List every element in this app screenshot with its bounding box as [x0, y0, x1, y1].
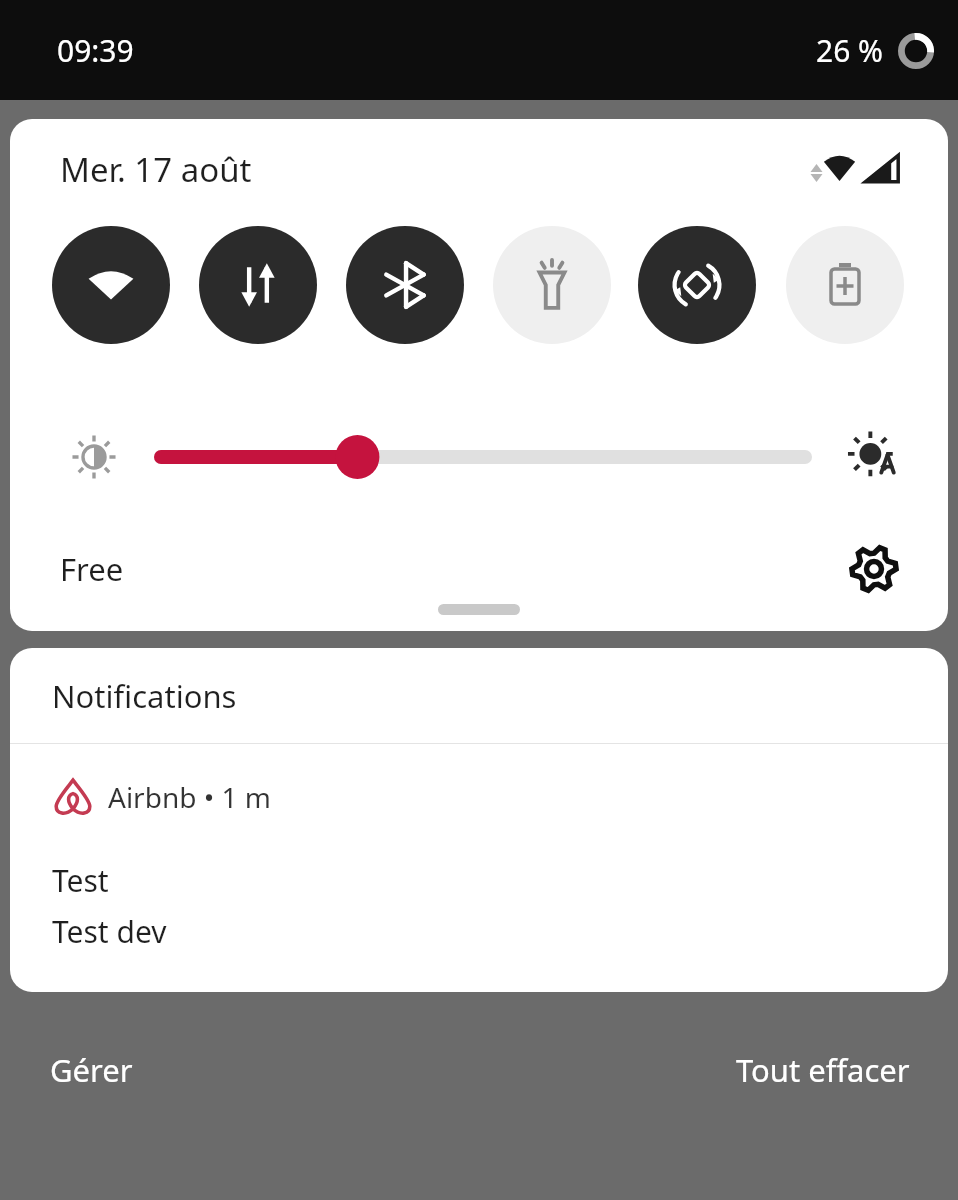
staticText: Airbnb • 1 m [108, 778, 271, 816]
button[interactable]: Battery saver [786, 226, 904, 344]
button[interactable]: Gérer [30, 1037, 153, 1103]
staticText: Gérer [50, 1049, 133, 1091]
staticText: Free [60, 548, 124, 590]
button[interactable]: Auto-rotate [638, 226, 756, 344]
button[interactable]: Brightness [153, 429, 813, 485]
staticText: Tout effacer [736, 1049, 910, 1091]
staticText: Mer. 17 août [60, 147, 252, 192]
staticText: 26 % [816, 30, 884, 71]
button[interactable]: Airbnb • 1 m [10, 744, 948, 952]
staticText: Test dev [52, 911, 167, 952]
staticText: Test [52, 860, 109, 901]
button[interactable]: Wi-Fi [52, 226, 170, 344]
staticText: Notifications [52, 675, 237, 717]
button[interactable]: Expand [438, 604, 520, 615]
button[interactable]: Flashlight [493, 226, 611, 344]
button[interactable]: Bluetooth [346, 226, 464, 344]
button[interactable]: Tout effacer [716, 1037, 930, 1103]
button[interactable]: Settings [842, 537, 906, 601]
button[interactable]: Mobile data [199, 226, 317, 344]
staticText: 09:39 [57, 30, 134, 71]
